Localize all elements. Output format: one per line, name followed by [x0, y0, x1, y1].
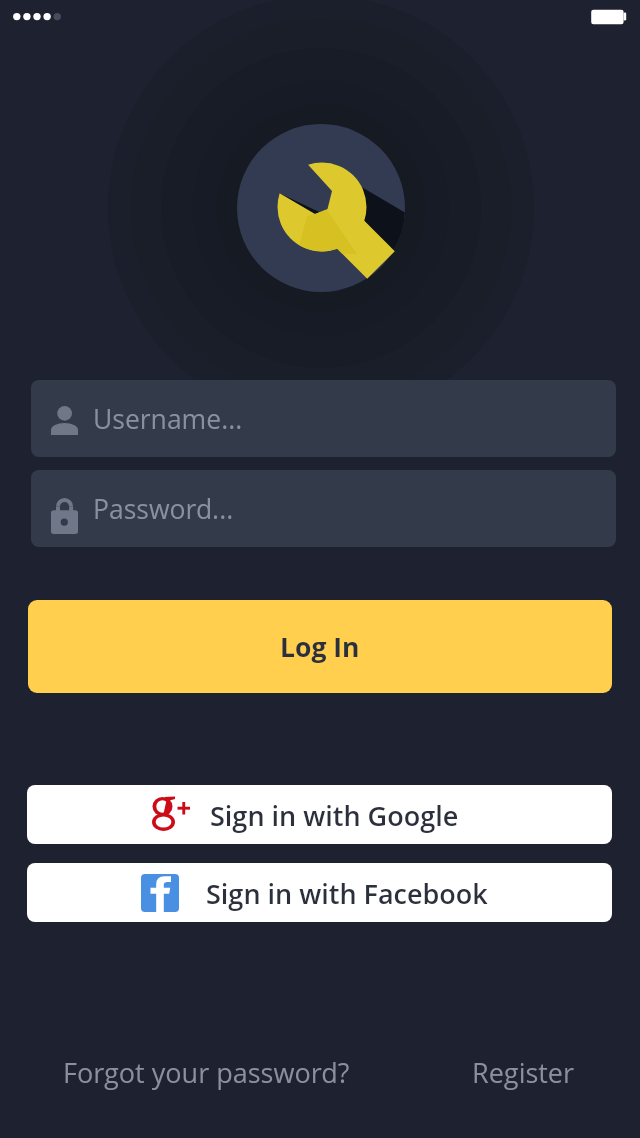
staticText: Log In: [280, 629, 360, 665]
button[interactable]: Log In: [28, 600, 612, 693]
button[interactable]: Register: [465, 1047, 582, 1098]
staticText: Sign in with Facebook: [206, 875, 488, 912]
button[interactable]: Forgot your password?: [56, 1047, 357, 1098]
button[interactable]: Username...: [31, 380, 616, 457]
staticText: Register: [472, 1054, 575, 1091]
staticText: Sign in with Google: [210, 797, 459, 834]
staticText: Username...: [93, 401, 243, 437]
button[interactable]: Sign in with Google: [27, 785, 612, 844]
button[interactable]: Sign in with Facebook: [27, 863, 612, 922]
staticText: Forgot your password?: [63, 1054, 350, 1091]
button[interactable]: Password...: [31, 470, 616, 547]
staticText: Password...: [93, 491, 234, 527]
other: App logo: [237, 124, 405, 292]
